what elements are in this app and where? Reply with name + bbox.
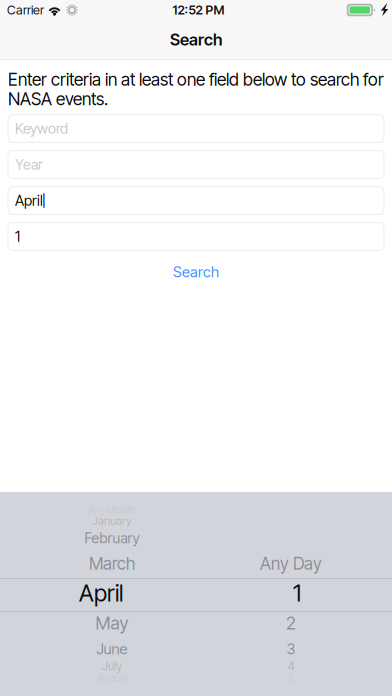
staticText: 12:52 PM bbox=[172, 2, 224, 18]
staticText: Carrier bbox=[7, 2, 44, 18]
staticText: 2 bbox=[286, 612, 296, 634]
button[interactable]: Month bbox=[8, 186, 384, 214]
staticText: 1 bbox=[15, 228, 20, 245]
staticText: April bbox=[79, 579, 123, 607]
button[interactable]: Keyword bbox=[8, 114, 384, 142]
staticText: Any Month bbox=[88, 504, 135, 516]
staticText: Keyword bbox=[15, 120, 68, 137]
button[interactable]: Search bbox=[146, 259, 246, 285]
button[interactable]: Day bbox=[8, 222, 384, 250]
staticText: 4 bbox=[287, 659, 294, 673]
staticText: April bbox=[15, 192, 43, 209]
staticText: 1 bbox=[293, 579, 301, 607]
staticText: July bbox=[102, 659, 122, 673]
staticText: January bbox=[92, 514, 132, 527]
staticText: Search bbox=[170, 30, 222, 49]
staticText: 5 bbox=[288, 672, 294, 684]
button[interactable]: Year bbox=[8, 150, 384, 178]
staticText: 3 bbox=[286, 640, 295, 658]
staticText: Year bbox=[15, 156, 43, 173]
staticText: June bbox=[96, 640, 127, 658]
staticText: Enter criteria in at least one field bel… bbox=[8, 69, 384, 90]
staticText: Search bbox=[173, 263, 219, 281]
staticText: May bbox=[95, 612, 128, 634]
staticText: August bbox=[97, 672, 127, 684]
staticText: March bbox=[89, 553, 135, 574]
staticText: NASA events. bbox=[8, 88, 108, 109]
staticText: February bbox=[84, 529, 139, 546]
staticText: Any Day bbox=[260, 553, 322, 574]
